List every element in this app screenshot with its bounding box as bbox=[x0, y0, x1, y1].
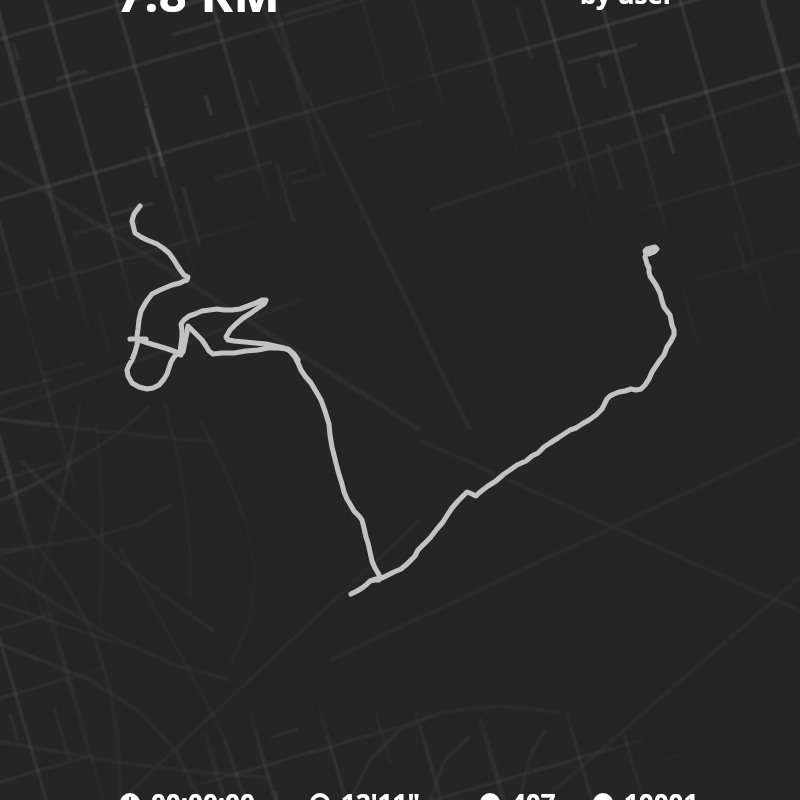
staticText: 407 bbox=[511, 785, 556, 800]
staticText: 7.8 KM bbox=[116, 0, 281, 27]
button[interactable]: Calories bbox=[480, 785, 556, 800]
button[interactable]: Duration bbox=[120, 785, 255, 800]
staticText: by user bbox=[580, 0, 675, 11]
staticText: 00:00:00 bbox=[151, 785, 255, 800]
button[interactable]: Pace bbox=[310, 785, 420, 800]
staticText: 12'11" bbox=[341, 785, 420, 800]
staticText: 10001 bbox=[624, 785, 699, 800]
button[interactable]: Steps bbox=[593, 785, 699, 800]
